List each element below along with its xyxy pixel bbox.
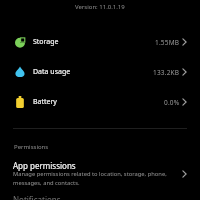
staticText: 0.0% (164, 98, 180, 107)
staticText: App permissions (13, 160, 76, 171)
button[interactable]: Storage (0, 27, 200, 57)
staticText: 1.55MB (155, 38, 180, 47)
staticText: Storage (33, 37, 59, 47)
staticText: Data usage (33, 67, 71, 77)
staticText: Manage permissions related to location, … (13, 170, 170, 186)
button[interactable]: Data usage (0, 57, 200, 87)
staticText: 133.2KB (153, 68, 180, 77)
staticText: Permissions (14, 143, 49, 151)
staticText: Notifications (13, 194, 61, 200)
button[interactable]: App permissions (0, 160, 200, 187)
button[interactable]: Battery (0, 87, 200, 117)
staticText: Battery (33, 97, 57, 107)
staticText: Version: 11.0.1.19 (75, 3, 125, 11)
